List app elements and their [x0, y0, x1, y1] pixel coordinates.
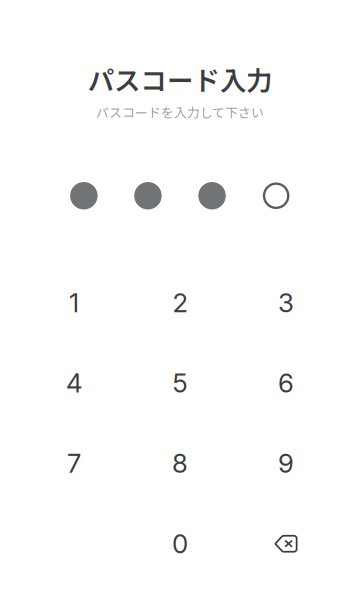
staticText: 0: [172, 528, 188, 559]
staticText: 3: [278, 287, 294, 318]
staticText: 2: [172, 287, 187, 318]
button[interactable]: 0: [127, 504, 233, 584]
staticText: 9: [278, 448, 294, 479]
button[interactable]: Delete: [233, 504, 339, 584]
button[interactable]: 5: [127, 343, 233, 423]
button[interactable]: 6: [233, 343, 339, 423]
staticText: 5: [172, 367, 187, 399]
staticText: 7: [67, 448, 81, 479]
staticText: 8: [172, 448, 188, 479]
staticText: 1: [69, 287, 79, 318]
button[interactable]: 4: [21, 343, 127, 423]
button[interactable]: 8: [127, 423, 233, 504]
staticText: パスコードを入力して下さい: [96, 103, 264, 121]
staticText: パスコード入力: [88, 60, 272, 98]
staticText: 4: [66, 367, 82, 399]
button[interactable]: 2: [127, 263, 233, 343]
button[interactable]: 1: [21, 263, 127, 343]
button[interactable]: 3: [233, 263, 339, 343]
button[interactable]: 7: [21, 423, 127, 504]
staticText: 6: [278, 367, 294, 399]
button[interactable]: 9: [233, 423, 339, 504]
